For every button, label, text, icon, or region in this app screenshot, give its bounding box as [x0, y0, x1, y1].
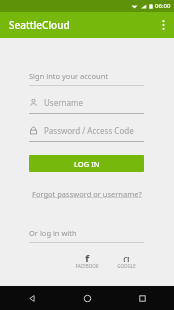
- button[interactable]: Username: [29, 97, 144, 108]
- staticText: Or log in with: [29, 228, 77, 238]
- button[interactable]: LOG IN: [29, 155, 144, 172]
- staticText: GOOGLE: [117, 263, 136, 269]
- staticText: SeattleCloud: [9, 18, 70, 32]
- staticText: g: [123, 251, 130, 262]
- button[interactable]: Back: [20, 286, 44, 310]
- button[interactable]: Password / Access Code: [29, 125, 144, 136]
- button[interactable]: Log in with FACEBOOK: [73, 250, 101, 270]
- button[interactable]: Home: [75, 286, 99, 310]
- staticText: LOG IN: [74, 159, 100, 169]
- staticText: FACEBOOK: [75, 263, 99, 269]
- button[interactable]: Log in with GOOGLE: [115, 250, 138, 270]
- button[interactable]: Forgot password or username?: [32, 189, 142, 199]
- staticText: Username: [44, 97, 83, 108]
- button[interactable]: Recent apps: [130, 286, 154, 310]
- button[interactable]: More options: [152, 12, 174, 38]
- staticText: 06:00: [155, 2, 171, 10]
- staticText: Sign into your account: [29, 71, 108, 81]
- staticText: f: [85, 251, 90, 262]
- staticText: Password / Access Code: [44, 125, 134, 136]
